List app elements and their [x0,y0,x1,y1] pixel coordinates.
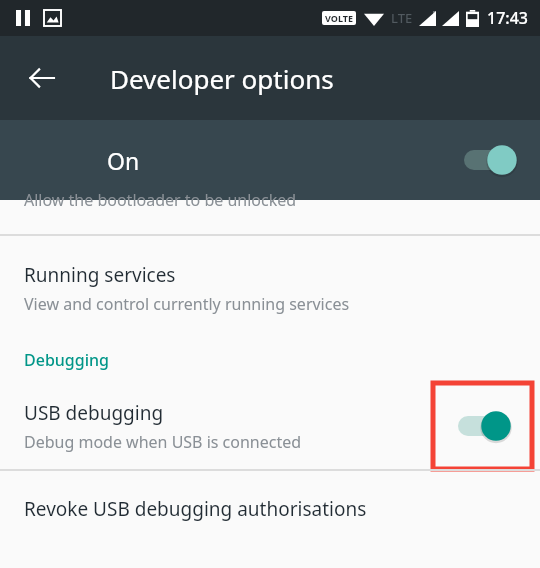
button[interactable]: Running services [0,236,540,337]
button[interactable]: Back [18,54,66,102]
button[interactable]: Revoke USB debugging authorisations [0,471,540,547]
staticText: Revoke USB debugging authorisations [24,496,367,522]
button[interactable]: USB debugging toggle [458,410,512,442]
staticText: Debugging [24,349,109,371]
staticText: Developer options [110,61,334,96]
staticText: 17:43 [487,7,528,29]
staticText: USB debugging [24,400,164,426]
staticText: Running services [24,262,176,288]
staticText: Debug mode when USB is connected [24,431,302,453]
staticText: LTE [391,9,413,27]
staticText: On [107,145,140,176]
button[interactable]: USB debugging [0,383,540,469]
staticText: View and control currently running servi… [24,293,350,315]
staticText: Allow the bootloader to be unlocked [24,189,297,211]
button[interactable]: On [0,120,540,200]
button[interactable]: Allow the bootloader to be unlocked [0,200,540,234]
staticText: VOLTE [325,12,353,24]
